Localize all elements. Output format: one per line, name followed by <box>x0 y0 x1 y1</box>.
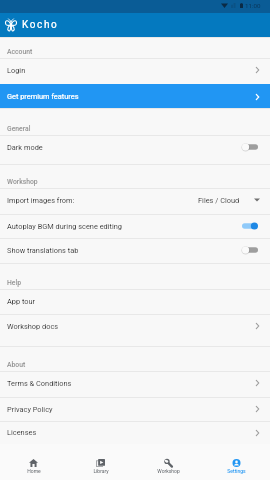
staticText: Settings <box>227 468 246 474</box>
button[interactable]: Dark mode <box>0 135 270 164</box>
button[interactable]: Workshop <box>134 444 202 480</box>
staticText: Privacy Policy <box>7 405 53 414</box>
button[interactable]: Login <box>0 58 270 84</box>
staticText: Import images from: <box>7 196 75 205</box>
button[interactable]: Licenses <box>0 421 270 444</box>
staticText: Workshop docs <box>7 322 59 331</box>
button[interactable]: Library <box>67 444 134 480</box>
staticText: Library <box>93 468 109 474</box>
staticText: Licenses <box>7 428 37 437</box>
button[interactable]: Workshop docs <box>0 314 270 346</box>
button[interactable]: Terms & Conditions <box>0 371 270 397</box>
staticText: Home <box>27 468 41 474</box>
staticText: Kocho <box>22 19 59 31</box>
button[interactable]: Home <box>0 444 67 480</box>
staticText: General <box>7 125 31 133</box>
button[interactable]: Import images from: <box>0 188 270 214</box>
staticText: App tour <box>7 297 36 306</box>
staticText: Dark mode <box>7 143 43 152</box>
button[interactable]: Privacy Policy <box>0 397 270 421</box>
staticText: Show translations tab <box>7 246 79 255</box>
staticText: 11:00 <box>245 2 261 9</box>
staticText: Account <box>7 48 33 56</box>
staticText: About <box>7 361 26 369</box>
staticText: Workshop <box>7 178 38 186</box>
button[interactable]: Autoplay BGM during scene editing <box>0 214 270 238</box>
staticText: Get premium features <box>7 92 79 101</box>
button[interactable]: Settings <box>202 444 270 480</box>
staticText: Terms & Conditions <box>7 379 72 388</box>
button[interactable]: App tour <box>0 289 270 314</box>
staticText: Autoplay BGM during scene editing <box>7 222 122 231</box>
button[interactable]: Get premium features <box>0 84 270 108</box>
staticText: Files / Cloud <box>198 196 240 205</box>
staticText: Help <box>7 279 22 287</box>
staticText: Login <box>7 66 26 75</box>
staticText: Workshop <box>157 468 180 474</box>
button[interactable]: Show translations tab <box>0 238 270 263</box>
